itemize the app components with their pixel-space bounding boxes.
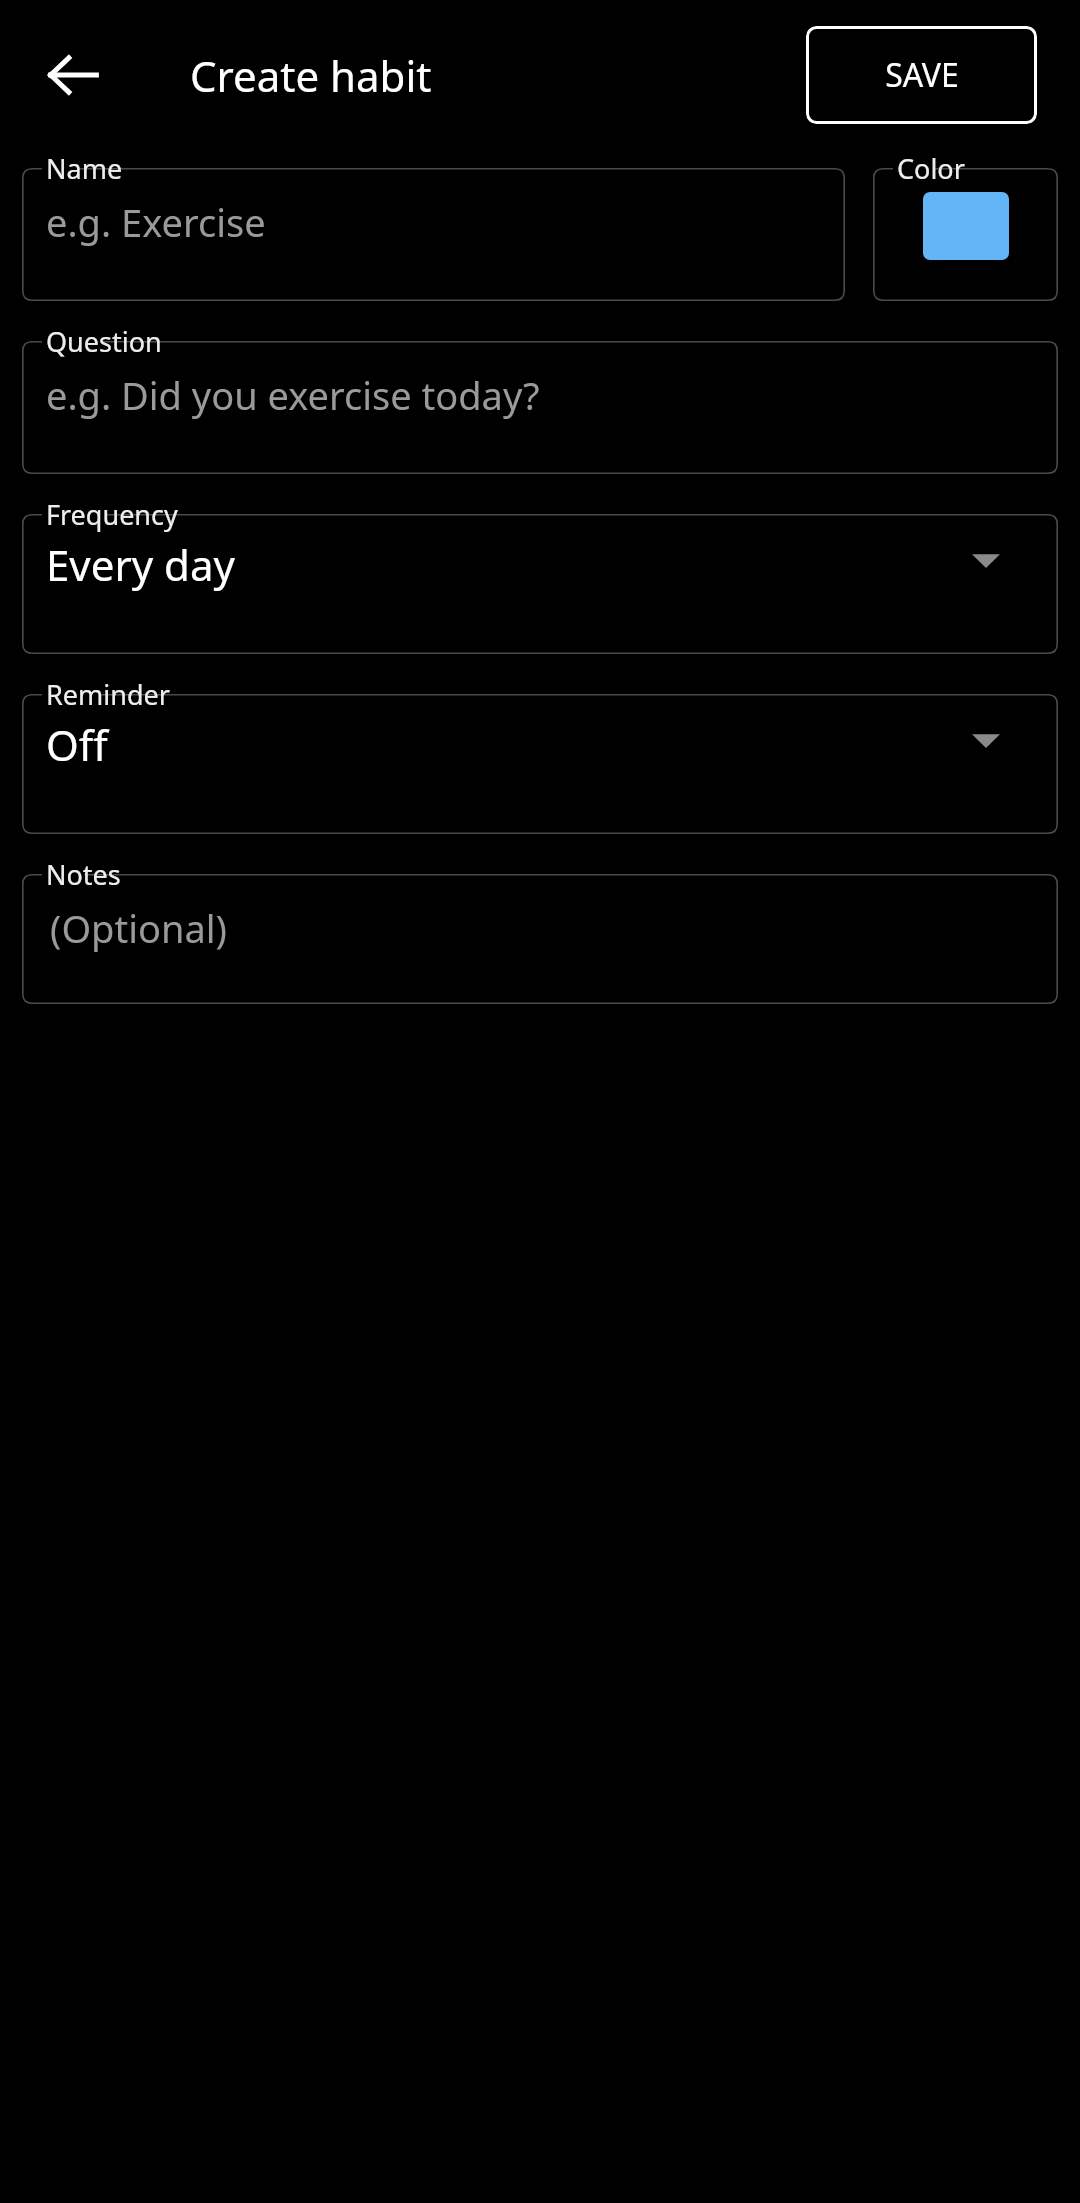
staticText: Color (897, 150, 965, 187)
staticText: Off (46, 716, 108, 773)
staticText: Reminder (46, 676, 170, 713)
button[interactable] (923, 192, 1009, 260)
staticText: e.g. Exercise (46, 196, 266, 248)
staticText: (Optional) (50, 902, 227, 954)
staticText: Create habit (190, 47, 432, 104)
button[interactable]: SAVE (806, 26, 1037, 124)
staticText: SAVE (885, 53, 959, 97)
button[interactable]: Name (22, 150, 845, 301)
button[interactable]: Color (873, 150, 1058, 301)
staticText: Notes (46, 856, 121, 893)
staticText: Every day (46, 536, 235, 593)
staticText: e.g. Did you exercise today? (46, 369, 540, 421)
button[interactable]: Notes (22, 856, 1058, 1004)
staticText: Question (46, 323, 162, 360)
button[interactable]: Question (22, 323, 1058, 474)
staticText: Frequency (46, 496, 178, 533)
button[interactable]: Frequency (22, 496, 1058, 654)
button[interactable]: Back (26, 28, 120, 122)
button[interactable]: Reminder (22, 676, 1058, 834)
staticText: Name (46, 150, 123, 187)
